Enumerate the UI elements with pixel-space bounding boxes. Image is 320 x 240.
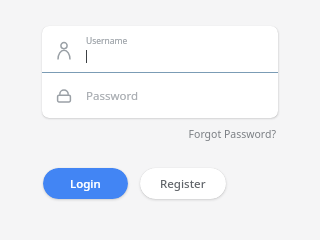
other: Password	[54, 86, 74, 106]
staticText: Username	[86, 35, 128, 47]
staticText: Password	[86, 88, 139, 104]
button[interactable]: Username	[42, 26, 278, 72]
other: Username	[54, 39, 74, 59]
button[interactable]: Login	[43, 168, 128, 199]
staticText: Forgot Password?	[188, 127, 276, 141]
staticText: Login	[70, 176, 101, 192]
button[interactable]: Forgot Password?	[186, 125, 278, 143]
button[interactable]: Password	[42, 73, 278, 118]
button[interactable]: Register	[140, 168, 226, 199]
staticText: Register	[160, 176, 206, 192]
